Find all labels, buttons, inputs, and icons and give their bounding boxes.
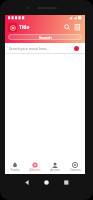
button[interactable]: Tracks	[5, 161, 25, 172]
staticText: Genres	[70, 168, 81, 172]
button[interactable]: Albums	[25, 161, 45, 172]
button[interactable]: Artists	[45, 161, 65, 172]
staticText: Title	[19, 24, 30, 31]
button[interactable]: Genres	[65, 161, 85, 172]
button[interactable]: Add	[74, 46, 79, 51]
staticText: Tracks	[10, 168, 20, 172]
staticText: Artists	[50, 168, 60, 172]
staticText: Search	[39, 35, 52, 40]
staticText: Albums	[29, 168, 41, 172]
button[interactable]: Search	[63, 23, 72, 32]
button[interactable]: More options	[73, 23, 82, 32]
button[interactable]: Search	[8, 34, 82, 40]
staticText: Search your music here...	[9, 46, 50, 51]
